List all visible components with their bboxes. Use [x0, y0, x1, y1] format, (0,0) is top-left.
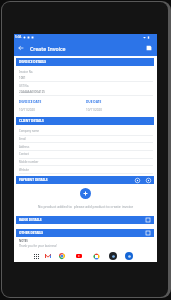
button[interactable]: Expand section — [145, 230, 151, 236]
staticText: PAYMENT DETAILS — [19, 178, 48, 182]
button[interactable]: Chrome — [58, 252, 66, 260]
staticText: Contact — [19, 152, 29, 156]
staticText: 10/11/2020 — [86, 108, 102, 112]
staticText: DUE DATE — [86, 100, 102, 104]
staticText: Thank you for your business! — [19, 244, 57, 248]
staticText: 1001 — [19, 76, 26, 80]
button[interactable]: Expand section — [145, 217, 151, 223]
button[interactable]: INVOICE DETAILS — [16, 58, 154, 66]
staticText: 5:04 — [15, 35, 22, 39]
staticText: Invoice No. — [19, 70, 34, 74]
staticText: No product added to please add product t… — [20, 204, 151, 209]
staticText: OTHER DETAILS — [19, 231, 44, 235]
button[interactable]: All apps — [32, 252, 40, 260]
staticText: BANK DETAILS — [19, 218, 42, 222]
button[interactable]: OTHER DETAILS — [16, 229, 154, 237]
button[interactable]: Back — [15, 40, 27, 56]
button[interactable]: YouTube — [75, 252, 83, 260]
staticText: CLIENT DETAILS — [19, 119, 44, 123]
staticText: Create Invoice — [30, 45, 66, 52]
staticText: 10/11/2020 — [19, 108, 35, 112]
staticText: Address — [19, 145, 30, 149]
staticText: GST No. — [19, 84, 30, 88]
staticText: Website — [19, 168, 30, 172]
staticText: Email — [19, 137, 26, 141]
button[interactable]: BANK DETAILS — [16, 216, 154, 224]
staticText: INVOICE DATE — [19, 100, 42, 104]
button[interactable]: Add product — [80, 188, 91, 199]
button[interactable]: Photos — [92, 252, 100, 260]
staticText: Mobile number — [19, 160, 39, 164]
button[interactable]: CLIENT DETAILS — [16, 117, 154, 125]
staticText: INVOICE DETAILS — [19, 60, 47, 64]
button[interactable]: PAYMENT DETAILS — [16, 176, 154, 184]
button[interactable]: Gmail — [44, 252, 52, 260]
button[interactable]: Clear payment details — [145, 177, 151, 183]
button[interactable]: Edit payment details — [134, 177, 140, 183]
staticText: 22AAAAA0000A1Z5 — [19, 90, 45, 94]
button[interactable]: Meet — [109, 252, 117, 260]
button[interactable]: Weather — [125, 252, 133, 260]
staticText: NOTES — [19, 239, 28, 243]
button[interactable]: Save invoice — [141, 40, 156, 56]
staticText: Company name — [19, 129, 39, 133]
